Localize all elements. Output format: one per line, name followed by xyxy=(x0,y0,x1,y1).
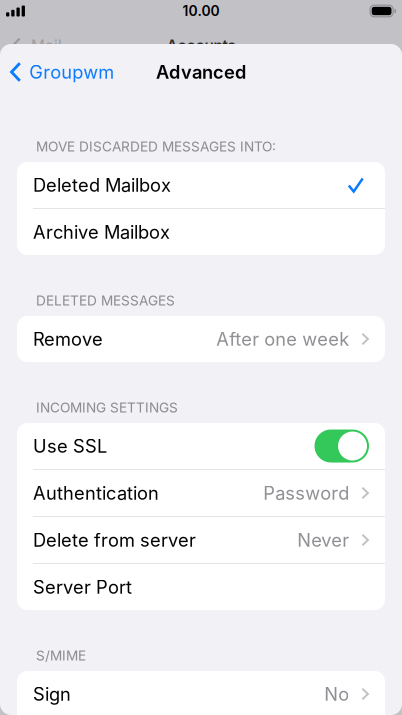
staticText: After one week xyxy=(216,328,349,350)
staticText: Password xyxy=(263,482,349,504)
staticText: MOVE DISCARDED MESSAGES INTO: xyxy=(36,138,276,155)
button[interactable]: Groupwm xyxy=(0,49,402,95)
staticText: Remove xyxy=(33,328,103,350)
button[interactable]: Server Port xyxy=(17,564,385,610)
staticText: No xyxy=(324,683,349,705)
staticText: Server Port xyxy=(33,576,132,598)
staticText: Archive Mailbox xyxy=(33,221,170,243)
staticText: S/MIME xyxy=(36,647,86,664)
button[interactable]: Delete from server xyxy=(17,517,385,563)
staticText: 10.00 xyxy=(182,3,219,19)
button[interactable]: Deleted Mailbox xyxy=(17,162,385,208)
staticText: INCOMING SETTINGS xyxy=(36,399,178,416)
button[interactable]: Authentication xyxy=(17,470,385,516)
staticText: Use SSL xyxy=(33,435,107,457)
button[interactable]: Remove xyxy=(17,316,385,362)
button[interactable]: Use SSL xyxy=(314,429,369,462)
staticText: Deleted Mailbox xyxy=(33,174,171,196)
staticText: Advanced xyxy=(156,61,246,83)
staticText: Mail xyxy=(31,37,62,55)
staticText: Never xyxy=(297,529,349,551)
button[interactable]: Sign xyxy=(17,671,385,715)
staticText: Sign xyxy=(33,683,71,705)
staticText: Accounts xyxy=(166,37,235,55)
staticText: DELETED MESSAGES xyxy=(36,292,175,309)
staticText: Authentication xyxy=(33,482,159,504)
staticText: Groupwm xyxy=(29,61,114,83)
button[interactable]: Archive Mailbox xyxy=(17,209,385,255)
staticText: Delete from server xyxy=(33,529,196,551)
